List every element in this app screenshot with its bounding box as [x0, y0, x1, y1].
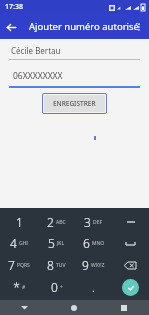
button[interactable]: 0 — [38, 276, 75, 298]
staticText: MNO — [92, 240, 105, 247]
button[interactable]: . — [75, 276, 112, 298]
button[interactable]: 3 — [75, 211, 112, 232]
button[interactable]: Hide keyboard — [0, 300, 49, 315]
button[interactable]: ENREGISTRER — [44, 95, 105, 112]
button[interactable]: 2 — [38, 211, 75, 232]
button[interactable]: 4 — [0, 232, 38, 254]
button[interactable]: 7 — [0, 254, 38, 276]
staticText: 0 — [51, 279, 58, 295]
button[interactable]: 9 — [75, 254, 112, 276]
staticText: PQRS — [17, 262, 30, 269]
staticText: * — [13, 279, 20, 295]
staticText: TUV — [56, 262, 66, 269]
button[interactable]: Backspace — [112, 254, 149, 276]
button[interactable] — [112, 211, 149, 232]
button[interactable]: More options — [129, 17, 149, 37]
staticText: Ajouter numéro autorisé — [29, 20, 139, 33]
staticText: + — [60, 284, 63, 291]
staticText: 6 — [83, 235, 90, 251]
staticText: Cécile Bertau — [11, 45, 61, 56]
staticText: WXYZ — [91, 262, 105, 269]
staticText: 06XXXXXXXX — [13, 70, 63, 82]
button[interactable]: Back — [0, 16, 22, 38]
button[interactable]: Home — [49, 300, 99, 315]
staticText: JKL — [57, 240, 65, 247]
staticText: 1 — [16, 214, 23, 230]
staticText: 7 — [8, 257, 15, 273]
staticText: DEF — [93, 219, 103, 226]
staticText: 3 — [84, 214, 91, 230]
staticText: 9 — [82, 257, 89, 273]
staticText: ABC — [56, 219, 66, 226]
button[interactable]: 5 — [38, 232, 75, 254]
button[interactable]: Recents — [99, 300, 149, 315]
staticText: ENREGISTRER — [53, 99, 96, 108]
button[interactable]: Enter — [112, 276, 149, 298]
staticText: 8 — [47, 257, 54, 273]
button[interactable]: Space — [112, 232, 149, 254]
staticText: 4 — [10, 235, 17, 251]
staticText: # — [22, 284, 26, 291]
button[interactable]: * — [0, 276, 38, 298]
staticText: GHI — [19, 240, 29, 247]
staticText: 17:38 — [5, 2, 23, 12]
button[interactable]: 8 — [38, 254, 75, 276]
button[interactable]: 6 — [75, 232, 112, 254]
staticText: 5 — [48, 235, 55, 251]
staticText: . — [92, 279, 95, 295]
staticText: 2 — [47, 214, 54, 230]
button[interactable]: 1 — [0, 211, 38, 232]
